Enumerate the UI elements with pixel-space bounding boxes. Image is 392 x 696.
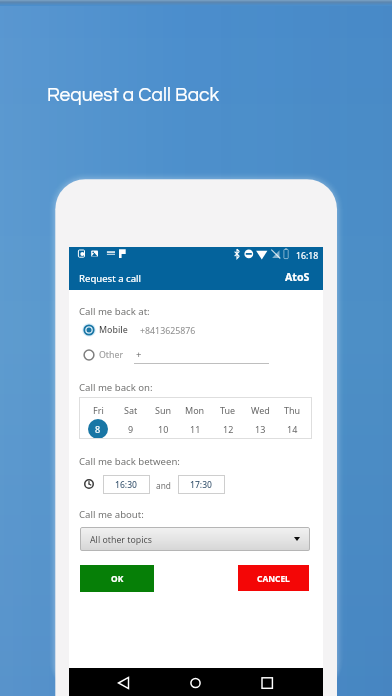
staticText: 8 [95, 423, 101, 435]
staticText: Sun [155, 404, 172, 416]
button[interactable]: 16:30 [103, 475, 150, 494]
staticText: Wed [251, 404, 270, 416]
staticText: +8413625876 [140, 325, 196, 337]
button[interactable]: Home [189, 676, 202, 689]
staticText: 16:30 [115, 479, 138, 491]
staticText: 10 [158, 423, 169, 435]
staticText: 14 [287, 423, 298, 435]
staticText: Request a call [79, 272, 141, 285]
staticText: AtoS [285, 270, 310, 284]
staticText: and [156, 480, 171, 491]
button[interactable]: Mobile [82, 323, 128, 337]
button[interactable]: Recents [261, 676, 274, 689]
staticText: Request a Call Back [47, 85, 220, 105]
button[interactable]: All other topics [80, 527, 310, 551]
button[interactable]: CANCEL [238, 565, 309, 591]
button[interactable]: Mon [179, 397, 211, 439]
button[interactable]: Sat [115, 397, 147, 439]
staticText: Sat [124, 404, 138, 416]
staticText: All other topics [90, 534, 152, 546]
button[interactable]: Back [117, 676, 132, 690]
staticText: Thu [284, 404, 301, 416]
button[interactable]: 17:30 [178, 475, 225, 494]
staticText: 11 [190, 423, 201, 435]
staticText: Call me about: [79, 508, 144, 521]
button[interactable]: Thu [276, 397, 308, 439]
staticText: Mobile [99, 324, 128, 336]
staticText: Tue [220, 404, 236, 416]
button[interactable]: Fri [82, 397, 114, 439]
button[interactable]: OK [80, 565, 154, 592]
button[interactable]: Other [82, 348, 124, 362]
staticText: Other [99, 349, 124, 361]
button[interactable]: Sun [147, 397, 179, 439]
staticText: 13 [255, 423, 266, 435]
button[interactable]: Tue [212, 397, 244, 439]
button[interactable]: Wed [244, 397, 276, 439]
staticText: Mon [185, 404, 205, 416]
staticText: Call me back between: [79, 455, 180, 468]
staticText: Call me back at: [79, 305, 150, 318]
staticText: 16:18 [296, 250, 319, 262]
staticText: 17:30 [190, 479, 213, 491]
staticText: 12 [223, 423, 234, 435]
staticText: 9 [128, 423, 134, 435]
button[interactable]: Atos logo [285, 270, 310, 284]
staticText: Call me back on: [79, 381, 153, 394]
button[interactable]: Pick time [84, 479, 94, 489]
staticText: OK [111, 573, 124, 584]
staticText: Fri [93, 404, 104, 416]
staticText: + [136, 348, 142, 361]
staticText: CANCEL [257, 573, 290, 584]
